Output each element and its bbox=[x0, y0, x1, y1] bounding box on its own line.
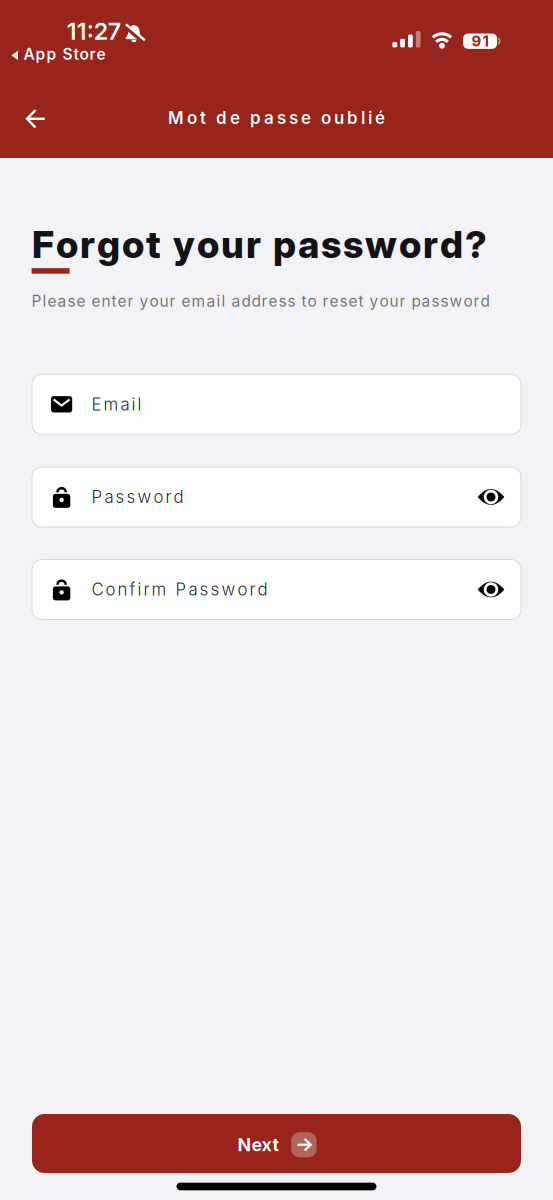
button[interactable]: Next bbox=[32, 1114, 521, 1173]
button[interactable]: Back to App Store bbox=[11, 45, 105, 63]
button[interactable]: Show password bbox=[478, 478, 521, 516]
staticText: 9 1 bbox=[472, 32, 489, 50]
button[interactable]: E m a i l bbox=[32, 374, 521, 434]
staticText: A p p S t o r e bbox=[23, 45, 105, 63]
button[interactable]: Back bbox=[18, 101, 53, 137]
staticText: Next bbox=[237, 1134, 279, 1155]
button[interactable]: C o n f i r m P a s s w o r d bbox=[32, 559, 521, 619]
staticText: P a s s w o r d bbox=[91, 487, 183, 507]
button[interactable]: P a s s w o r d bbox=[32, 467, 521, 527]
staticText: 11:27 bbox=[67, 17, 121, 45]
staticText: P l e a s e e n t e r y o u r e m a i l … bbox=[31, 292, 489, 310]
button[interactable]: Show password bbox=[478, 570, 521, 609]
staticText: M o t d e p a s s e o u b l i é bbox=[168, 108, 385, 128]
staticText: E m a i l bbox=[91, 394, 141, 414]
staticText: F o r g o t y o u r p a s s w o r d ? bbox=[32, 222, 487, 267]
staticText: C o n f i r m P a s s w o r d bbox=[91, 579, 267, 600]
